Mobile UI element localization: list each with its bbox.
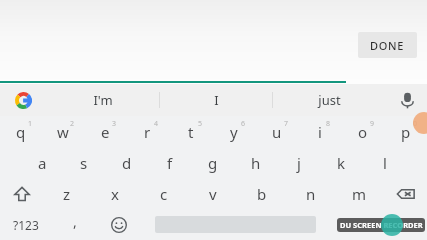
staticText: 3 — [112, 119, 117, 129]
staticText: 6 — [241, 119, 246, 129]
button[interactable]: Emoji — [98, 209, 140, 240]
staticText: w — [57, 122, 69, 142]
button[interactable]: w — [42, 116, 84, 147]
button[interactable]: k — [320, 147, 363, 178]
button[interactable]: g — [191, 147, 234, 178]
button[interactable]: j — [277, 147, 320, 178]
button[interactable]: a — [21, 147, 63, 178]
staticText: d — [122, 153, 132, 173]
button[interactable]: DONE — [358, 32, 417, 58]
staticText: q — [16, 122, 26, 142]
staticText: c — [160, 184, 168, 204]
staticText: b — [257, 184, 267, 204]
button[interactable]: r — [126, 116, 169, 147]
button[interactable]: y — [212, 116, 255, 147]
staticText: j — [297, 153, 301, 173]
staticText: , — [73, 212, 77, 231]
staticText: DU SCREEN RECORDER — [340, 220, 423, 230]
button[interactable]: e — [84, 116, 126, 147]
staticText: g — [208, 153, 218, 173]
button[interactable]: s — [63, 147, 105, 178]
staticText: p — [401, 122, 411, 142]
button[interactable]: f — [148, 147, 191, 178]
button[interactable]: ?123 — [0, 209, 52, 240]
staticText: 4 — [154, 119, 159, 129]
staticText: o — [358, 122, 368, 142]
staticText: t — [188, 122, 194, 142]
staticText: h — [251, 153, 261, 173]
staticText: 1 — [28, 119, 33, 129]
button[interactable]: v — [188, 178, 237, 209]
staticText: 0 — [413, 119, 418, 129]
staticText: m — [352, 184, 367, 204]
button[interactable]: z — [43, 178, 91, 209]
staticText: f — [167, 153, 173, 173]
staticText: 7 — [284, 119, 289, 129]
staticText: ?123 — [13, 217, 39, 233]
button[interactable]: Backspace — [384, 178, 427, 209]
staticText: l — [383, 153, 387, 173]
staticText: 2 — [70, 119, 75, 129]
staticText: y — [230, 122, 238, 142]
staticText: DONE — [370, 38, 405, 53]
button[interactable]: i — [298, 116, 341, 147]
button[interactable]: just — [273, 84, 385, 116]
staticText: x — [111, 184, 119, 204]
staticText: n — [306, 184, 316, 204]
button[interactable]: t — [169, 116, 212, 147]
staticText: k — [337, 153, 346, 173]
button[interactable]: I — [160, 84, 272, 116]
staticText: a — [38, 153, 47, 173]
staticText: i — [318, 122, 322, 142]
button[interactable]: , — [52, 209, 98, 240]
button[interactable]: l — [363, 147, 406, 178]
staticText: u — [272, 122, 282, 142]
staticText: z — [63, 184, 71, 204]
staticText: s — [80, 153, 88, 173]
staticText: e — [101, 122, 110, 142]
button[interactable]: u — [255, 116, 298, 147]
button[interactable]: q — [0, 116, 42, 147]
button[interactable]: h — [234, 147, 277, 178]
button[interactable]: Google search — [0, 84, 46, 116]
button[interactable]: m — [335, 178, 384, 209]
staticText: just — [318, 91, 341, 109]
staticText: 8 — [326, 119, 331, 129]
staticText: 5 — [198, 119, 203, 129]
staticText: I — [214, 91, 219, 109]
button[interactable]: x — [91, 178, 139, 209]
button[interactable]: b — [237, 178, 286, 209]
button[interactable]: o — [341, 116, 384, 147]
button[interactable]: I'm — [46, 84, 159, 116]
staticText: I'm — [93, 91, 113, 109]
staticText: r — [144, 122, 151, 142]
staticText: 9 — [370, 119, 375, 129]
staticText: v — [209, 184, 217, 204]
button[interactable]: p — [384, 116, 427, 147]
button[interactable]: n — [286, 178, 335, 209]
button[interactable]: d — [105, 147, 148, 178]
button[interactable]: Voice input — [387, 84, 427, 116]
button[interactable]: Shift — [0, 178, 43, 209]
button[interactable]: c — [139, 178, 188, 209]
